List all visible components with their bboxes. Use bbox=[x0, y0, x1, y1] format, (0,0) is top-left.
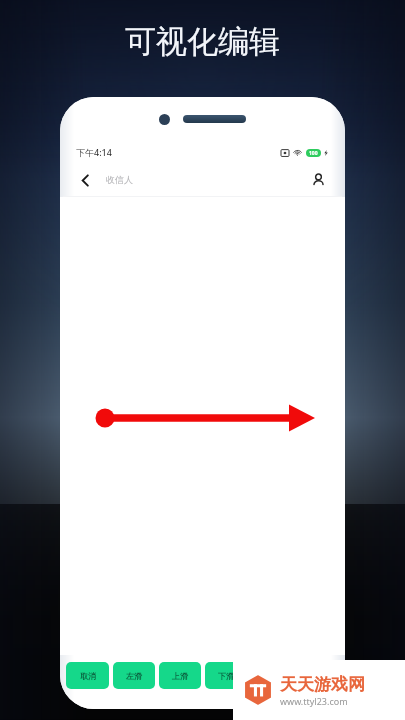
staticText: 取消 bbox=[80, 671, 96, 681]
staticText: 天天游戏网 bbox=[280, 674, 365, 695]
button[interactable]: 确定 bbox=[297, 662, 339, 689]
staticText: 下午4:14 bbox=[76, 146, 112, 158]
staticText: 上滑 bbox=[172, 671, 188, 681]
button[interactable]: 返回 bbox=[73, 168, 97, 192]
button[interactable]: 取消 bbox=[66, 662, 109, 689]
button[interactable]: 左滑 bbox=[113, 662, 155, 689]
staticText: 右滑 bbox=[264, 671, 280, 681]
button[interactable]: 下滑 bbox=[205, 662, 247, 689]
staticText: 下滑 bbox=[218, 671, 234, 681]
button[interactable]: 上滑 bbox=[159, 662, 201, 689]
button[interactable]: 右滑 bbox=[251, 662, 293, 689]
staticText: 左滑 bbox=[126, 671, 142, 681]
staticText: www.ttyl23.com bbox=[280, 695, 348, 707]
staticText: 100 bbox=[309, 150, 318, 157]
button[interactable]: 联系人 bbox=[306, 168, 330, 192]
staticText: 收信人 bbox=[106, 174, 133, 185]
staticText: 确定 bbox=[310, 671, 326, 681]
staticText: 可视化编辑 bbox=[125, 22, 280, 61]
